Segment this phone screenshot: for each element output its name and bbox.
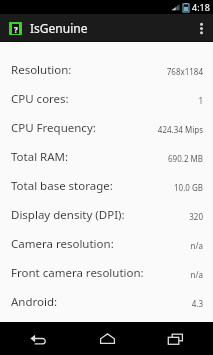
staticText: Front camera resolution:	[11, 265, 144, 281]
staticText: Display density (DPI):	[11, 207, 125, 223]
staticText: Total base storage:	[11, 178, 113, 194]
button[interactable]: Total base storage:	[11, 172, 203, 201]
staticText: 4.3	[191, 298, 203, 309]
button[interactable]: Display density (DPI):	[11, 201, 203, 230]
button[interactable]: Home	[77, 322, 137, 355]
button[interactable]: App icon	[9, 22, 22, 35]
staticText: 424.34 Mips	[157, 124, 203, 135]
button[interactable]: CPU cores:	[11, 85, 203, 114]
button[interactable]: More options	[189, 14, 213, 42]
button[interactable]: Android:	[11, 288, 203, 317]
staticText: ?	[14, 24, 18, 34]
staticText: CPU cores:	[11, 91, 69, 107]
staticText: 690.2 MB	[168, 153, 203, 164]
staticText: Resolution:	[11, 62, 72, 78]
staticText: 10.0 GB	[174, 182, 203, 193]
staticText: CPU Frequency:	[11, 120, 96, 136]
button[interactable]: Total RAM:	[11, 143, 203, 172]
button[interactable]: Resolution:	[11, 56, 203, 85]
staticText: IsGenuine	[30, 20, 88, 36]
staticText: Total RAM:	[11, 149, 69, 165]
button[interactable]: Front camera resolution:	[11, 259, 203, 288]
staticText: 768x1184	[166, 66, 203, 77]
button[interactable]: Back	[8, 322, 68, 355]
button[interactable]: Camera resolution:	[11, 230, 203, 259]
button[interactable]: Recent apps	[145, 322, 205, 355]
staticText: 4:18	[192, 1, 210, 13]
staticText: 320	[189, 211, 203, 222]
staticText: 1	[198, 95, 203, 106]
staticText: Camera resolution:	[11, 236, 114, 252]
staticText: n/a	[190, 269, 203, 280]
button[interactable]: CPU Frequency:	[11, 114, 203, 143]
staticText: n/a	[190, 240, 203, 251]
staticText: Android:	[11, 294, 58, 310]
